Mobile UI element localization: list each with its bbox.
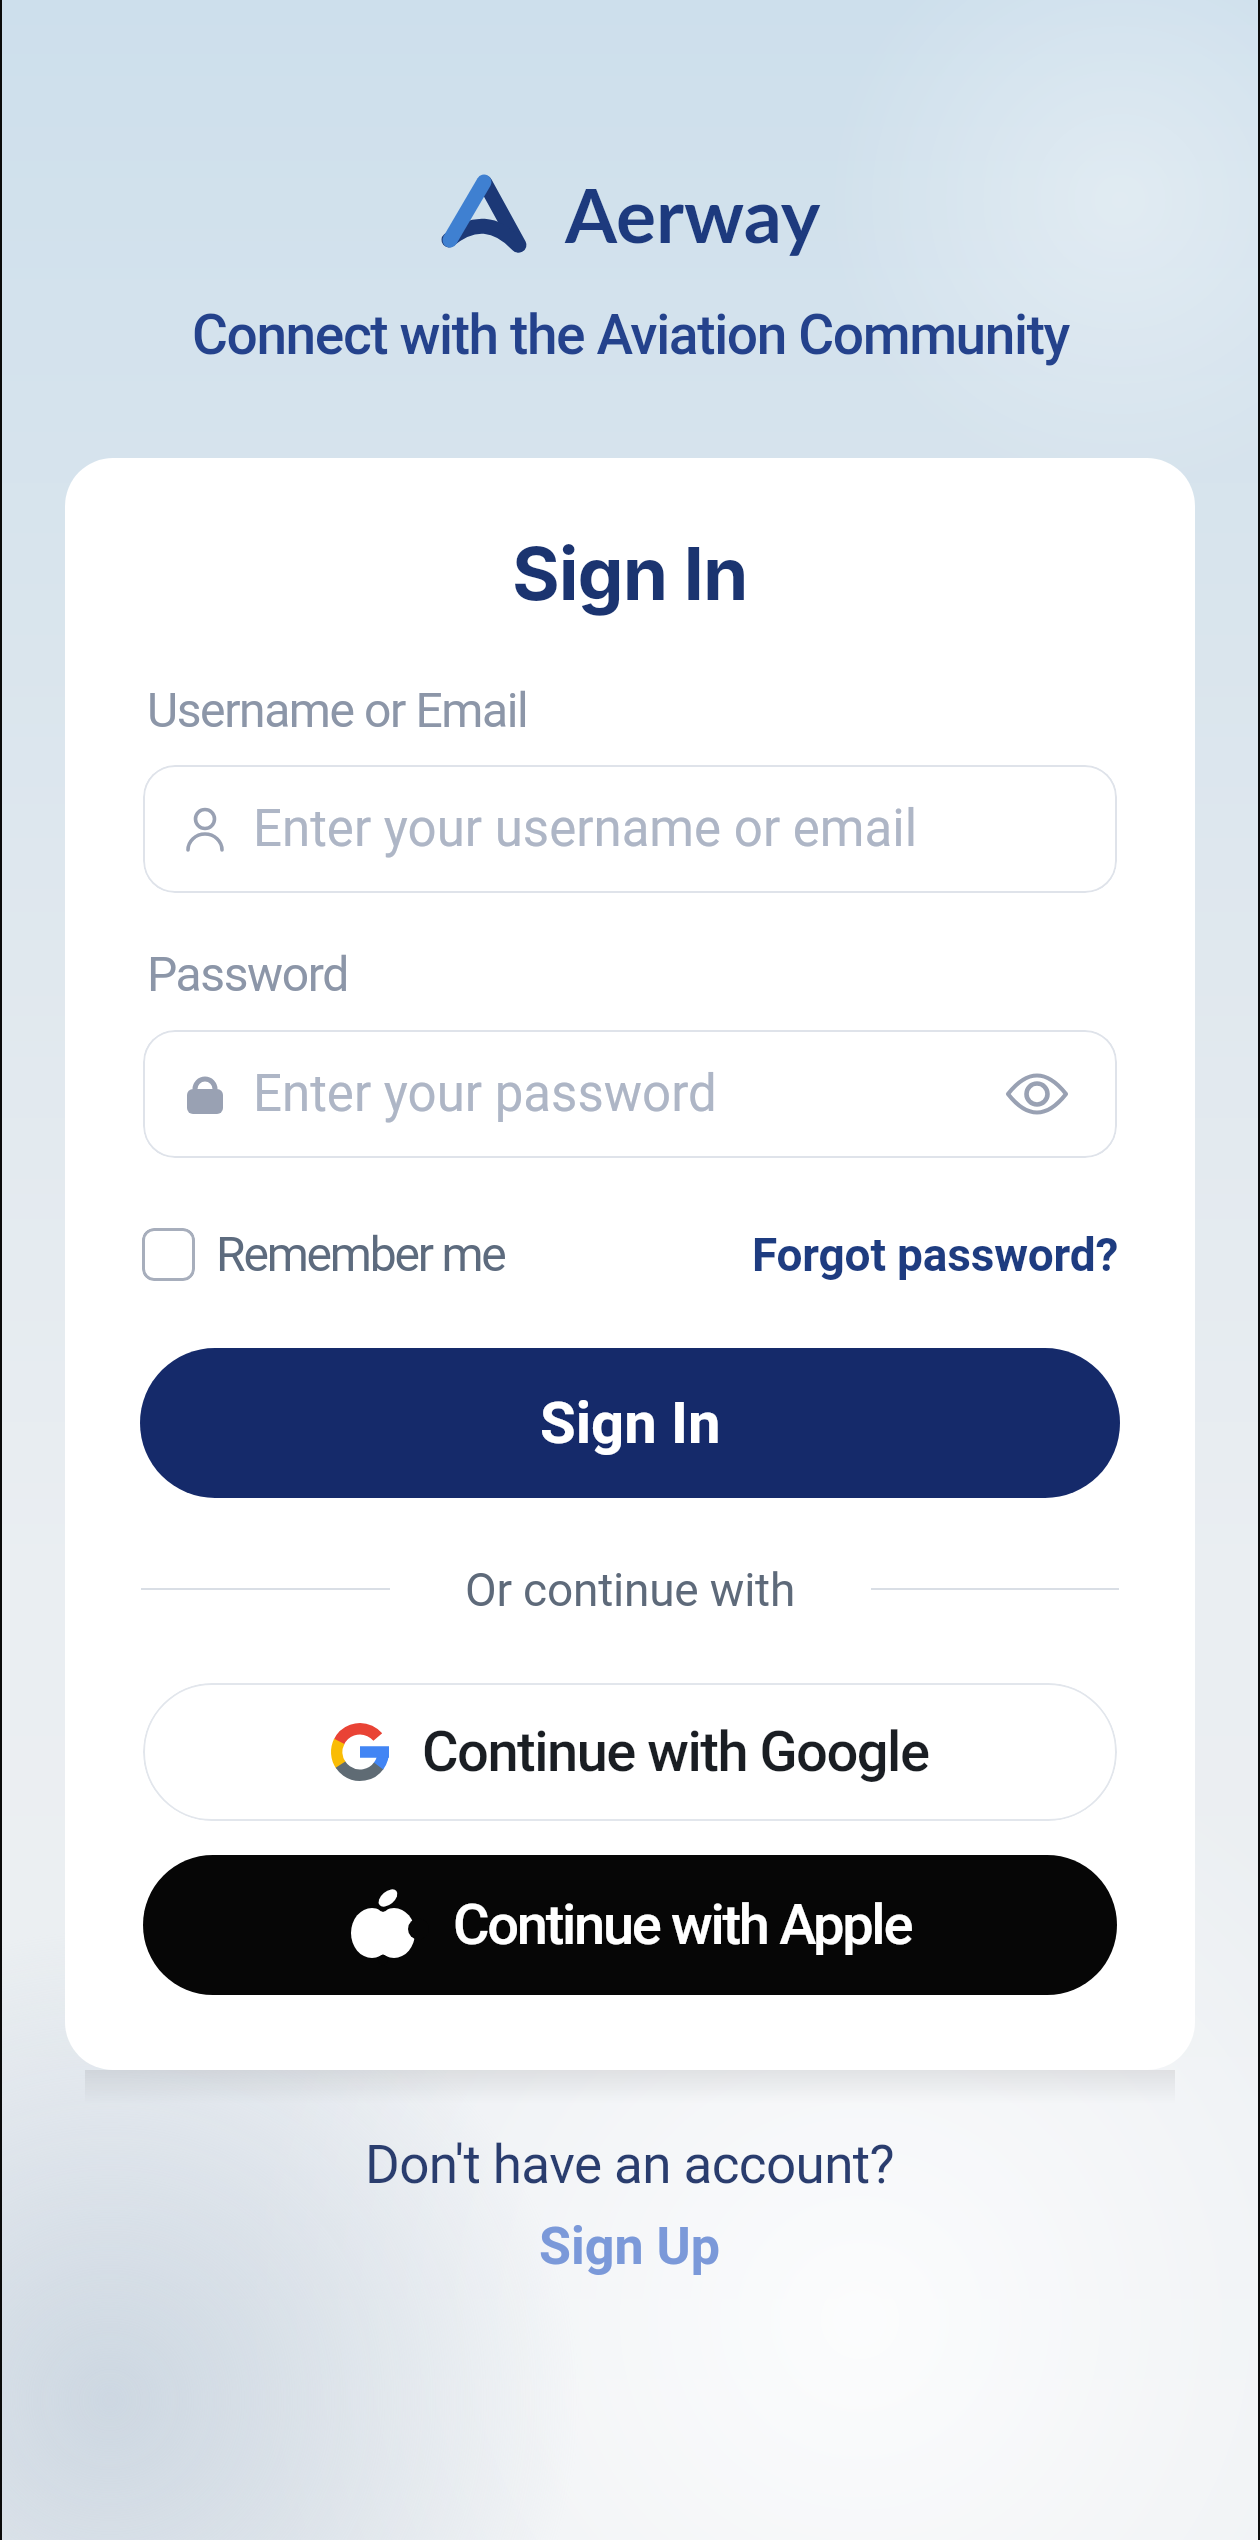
button[interactable]: Continue with Apple [143,1855,1117,1995]
button[interactable]: Enter your password [143,1030,1117,1158]
button[interactable] [142,1228,195,1281]
staticText: Continue with Google [422,1719,929,1785]
staticText: Continue with Apple [453,1892,912,1958]
staticText: Or continue with [465,1563,796,1617]
button[interactable]: Sign Up [539,2216,721,2277]
button[interactable]: Forgot password? [752,1228,1119,1282]
button[interactable]: Sign In [140,1348,1120,1498]
staticText: Sign In [540,1389,721,1457]
staticText: Don't have an account? [365,2134,895,2196]
staticText: Aerway [565,169,821,259]
staticText: Remember me [216,1226,505,1282]
staticText: Enter your username or email [253,799,918,859]
staticText: Username or Email [147,682,528,738]
button[interactable]: Continue with Google [143,1683,1117,1821]
staticText: Enter your password [253,1064,717,1124]
staticText: Sign In [512,529,748,617]
staticText: Connect with the Aviation Community [192,303,1069,367]
button[interactable]: Enter your username or email [143,765,1117,893]
staticText: Password [147,946,348,1002]
